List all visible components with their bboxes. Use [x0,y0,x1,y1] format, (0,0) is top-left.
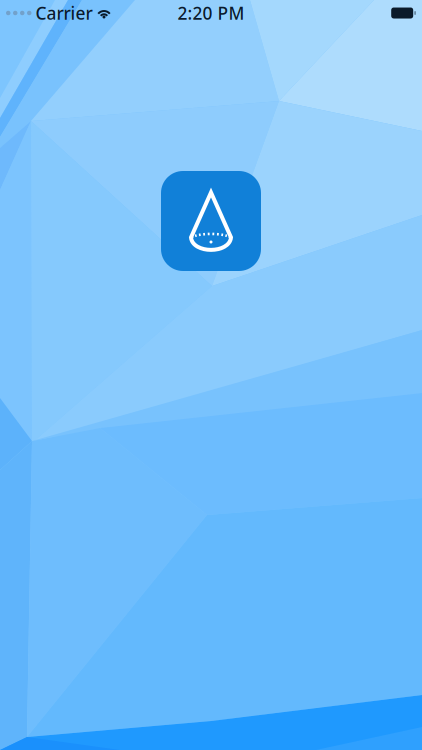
staticText: Carrier [35,1,92,24]
staticText: 2:20 PM [177,1,244,24]
